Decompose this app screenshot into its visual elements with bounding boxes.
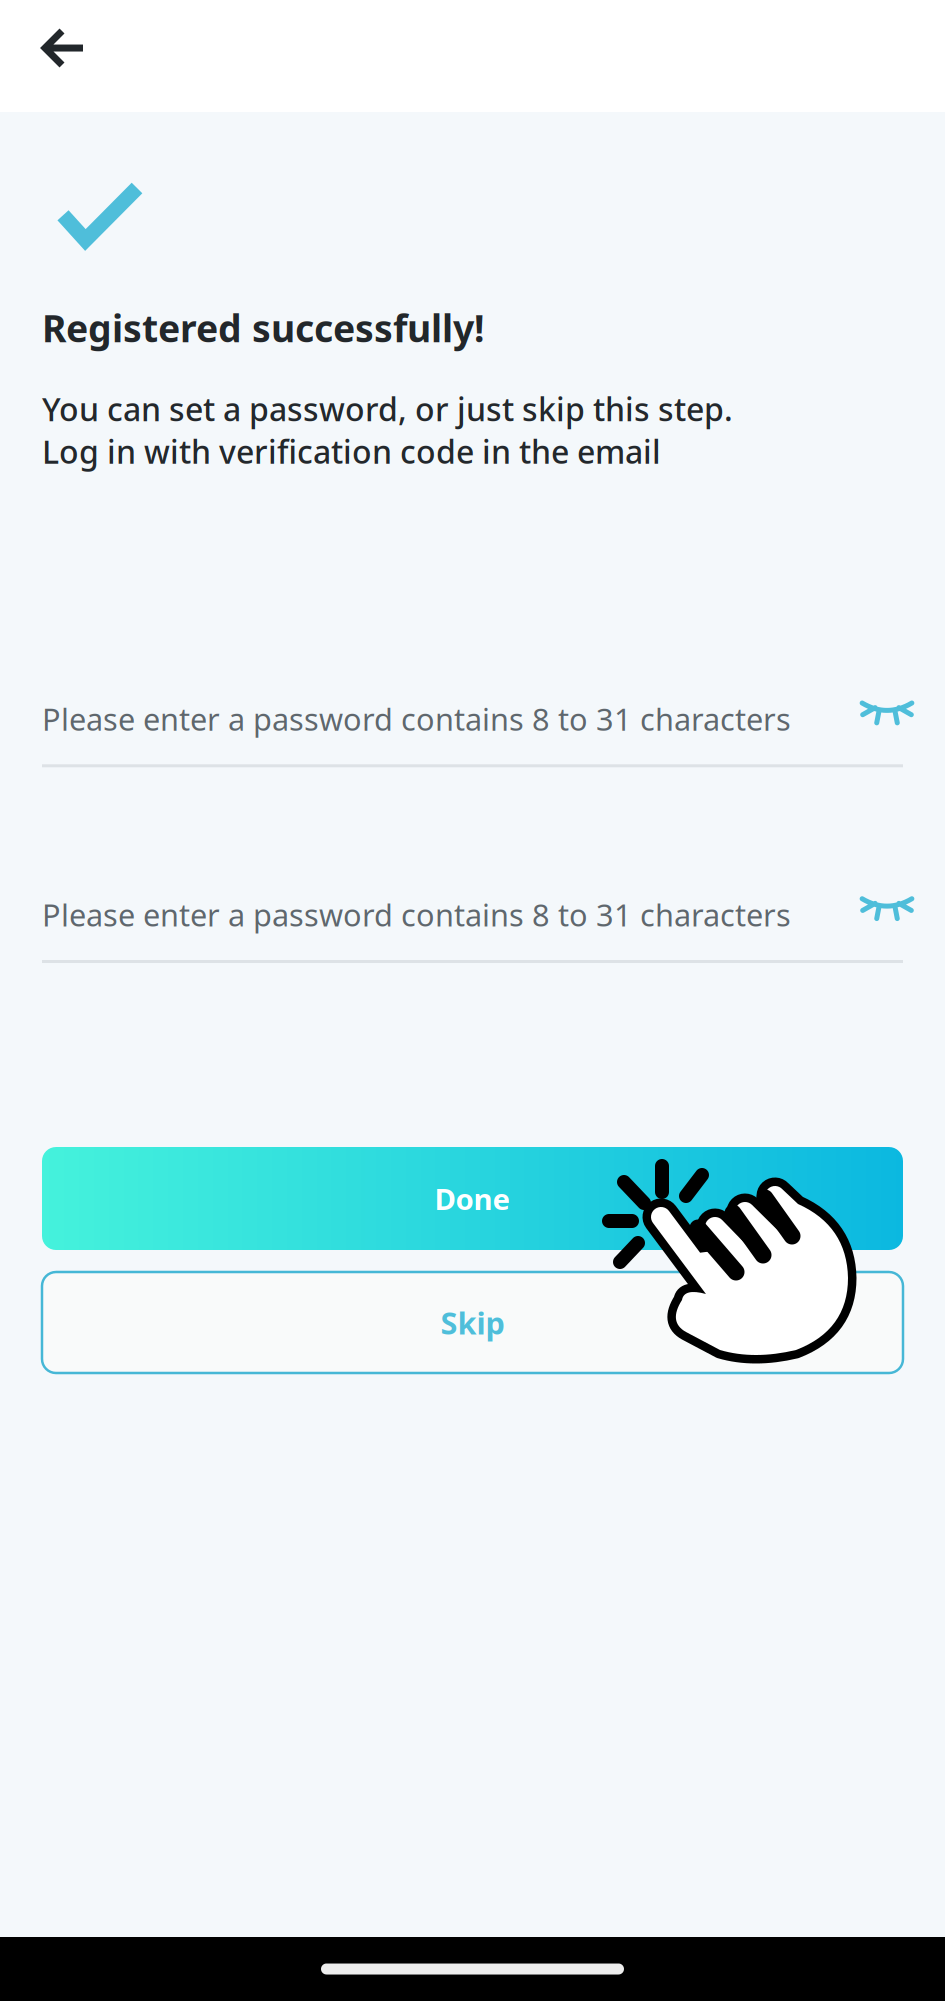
button[interactable]: Show password <box>836 897 903 933</box>
button[interactable]: Skip <box>42 1272 903 1373</box>
button[interactable]: Show password <box>836 701 903 737</box>
staticText: Log in with verification code in the ema… <box>42 430 661 473</box>
staticText: Registered successfully! <box>42 303 485 353</box>
staticText: Please enter a password contains 8 to 31… <box>42 699 791 739</box>
staticText: You can set a password, or just skip thi… <box>42 388 733 430</box>
staticText: Skip <box>440 1302 504 1343</box>
button[interactable]: Back <box>0 0 97 112</box>
staticText: Done <box>434 1179 510 1218</box>
staticText: Please enter a password contains 8 to 31… <box>42 894 791 935</box>
button[interactable]: Done <box>42 1147 903 1250</box>
